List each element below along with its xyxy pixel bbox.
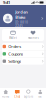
button[interactable]: Chat: [11, 88, 23, 99]
button[interactable]: Favorites: [23, 29, 43, 40]
button[interactable]: Settings: [0, 58, 46, 65]
staticText: Orders: [8, 44, 21, 49]
button[interactable]: Explore: [23, 88, 34, 99]
button[interactable]: Jordan Blake: [0, 10, 46, 27]
staticText: Home: [2, 95, 10, 98]
staticText: Wallet: [9, 36, 17, 40]
button[interactable]: Coupons: [0, 50, 46, 58]
button[interactable]: Me: [34, 88, 46, 99]
staticText: Settings: [8, 58, 21, 64]
staticText: Chat: [14, 95, 20, 98]
staticText: ID: 8810 2245: [15, 21, 28, 28]
staticText: 9:41: [3, 0, 10, 5]
button[interactable]: Home: [0, 88, 11, 99]
button[interactable]: Orders: [0, 43, 46, 50]
staticText: Me: [38, 95, 42, 98]
staticText: Jordan Blake: [15, 9, 28, 20]
staticText: Favorites: [27, 36, 38, 40]
button[interactable]: Wallet: [3, 29, 23, 40]
staticText: Explore: [24, 95, 34, 98]
staticText: Coupons: [8, 51, 23, 56]
